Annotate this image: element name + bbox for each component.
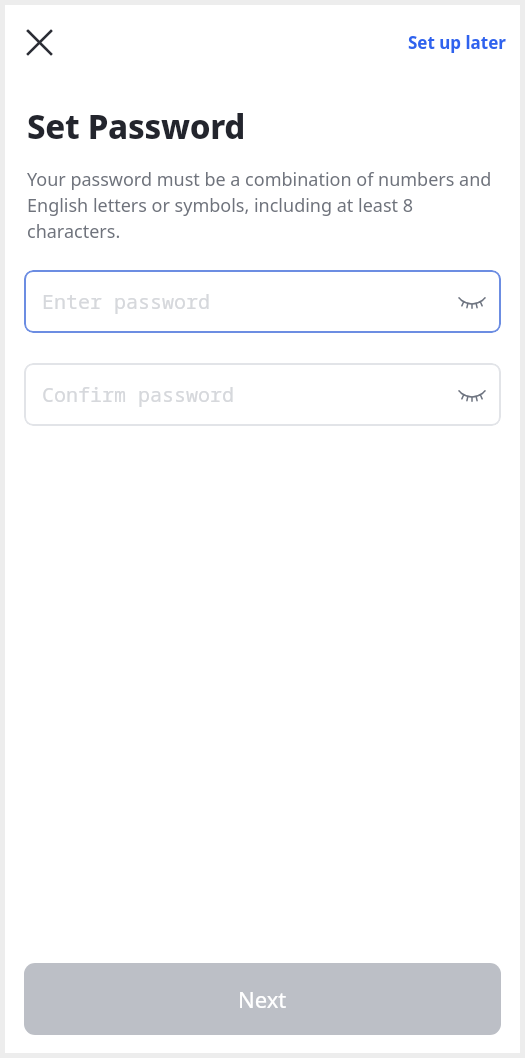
button[interactable]: Show password xyxy=(449,372,495,418)
button[interactable]: Next xyxy=(24,963,501,1035)
staticText: Next xyxy=(238,984,287,1014)
button[interactable]: Close xyxy=(13,16,65,68)
staticText: Your password must be a combination of n… xyxy=(27,167,502,244)
staticText: Set Password xyxy=(27,104,245,149)
staticText: Confirm password xyxy=(42,381,234,408)
staticText: Set up later xyxy=(408,31,506,54)
button[interactable]: Confirm password xyxy=(24,363,501,426)
button[interactable]: Show password xyxy=(449,279,495,325)
staticText: Enter password xyxy=(42,288,210,315)
button[interactable]: Set up later xyxy=(394,23,520,62)
button[interactable]: Enter password xyxy=(24,270,501,333)
